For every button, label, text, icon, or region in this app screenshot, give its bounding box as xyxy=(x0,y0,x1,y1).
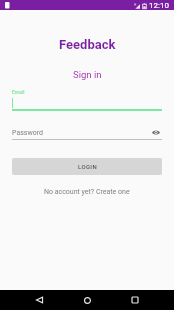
staticText: Password xyxy=(12,129,43,137)
button[interactable]: LOGIN xyxy=(12,158,162,175)
staticText: No account yet? Create one xyxy=(44,188,130,196)
staticText: Sign in xyxy=(73,69,102,80)
staticText: 12:10 xyxy=(149,1,169,10)
button[interactable]: Recent apps xyxy=(128,293,142,307)
staticText: LOGIN xyxy=(78,163,97,170)
staticText: Feedback xyxy=(59,37,116,52)
button[interactable]: Show password xyxy=(150,126,162,138)
staticText: Email xyxy=(12,89,25,95)
button[interactable]: Home xyxy=(80,293,94,307)
button[interactable]: Back xyxy=(32,293,46,307)
button[interactable]: No account yet? Create one xyxy=(40,187,134,197)
